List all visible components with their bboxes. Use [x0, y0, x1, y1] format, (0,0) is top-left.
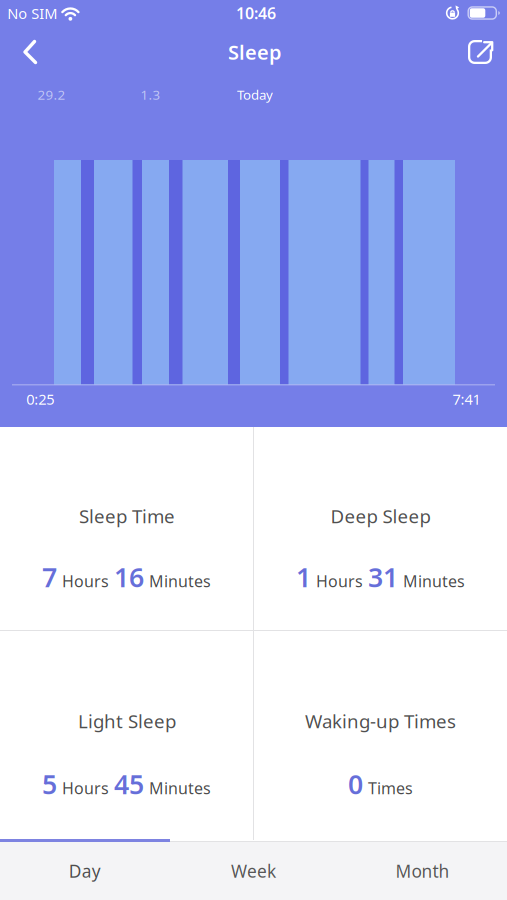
- staticText: 7:41: [452, 389, 480, 409]
- button[interactable]: [8, 36, 52, 68]
- staticText: Sleep: [228, 39, 282, 65]
- staticText: 45: [114, 766, 144, 802]
- staticText: 1.3: [140, 86, 160, 103]
- staticText: 31: [368, 559, 398, 595]
- staticText: Hours: [316, 570, 363, 592]
- staticText: Hours: [62, 570, 109, 592]
- staticText: Waking-up Times: [305, 709, 456, 733]
- staticText: Sleep Time: [79, 504, 175, 528]
- staticText: Week: [231, 859, 276, 882]
- staticText: Times: [368, 777, 413, 799]
- button[interactable]: Day: [0, 842, 169, 900]
- staticText: Minutes: [149, 570, 211, 592]
- staticText: Today: [237, 86, 273, 103]
- button[interactable]: 1.3: [115, 81, 185, 107]
- staticText: Light Sleep: [78, 709, 176, 733]
- staticText: Deep Sleep: [330, 504, 430, 528]
- staticText: Hours: [62, 777, 109, 799]
- staticText: Day: [69, 859, 101, 882]
- staticText: 0: [348, 766, 363, 802]
- staticText: 5: [42, 766, 57, 802]
- staticText: Minutes: [403, 570, 465, 592]
- staticText: Minutes: [149, 777, 211, 799]
- button[interactable]: [465, 33, 505, 69]
- staticText: No SIM: [7, 3, 57, 23]
- staticText: 1: [296, 559, 311, 595]
- staticText: 10:46: [236, 2, 276, 24]
- staticText: Month: [395, 859, 449, 882]
- button[interactable]: 29.2: [16, 81, 86, 107]
- staticText: 29.2: [37, 86, 65, 103]
- button[interactable]: Today: [215, 81, 295, 107]
- staticText: 7: [42, 559, 57, 595]
- button[interactable]: Week: [169, 842, 338, 900]
- staticText: 0:25: [26, 389, 54, 409]
- button[interactable]: Month: [338, 842, 507, 900]
- staticText: 16: [114, 559, 144, 595]
